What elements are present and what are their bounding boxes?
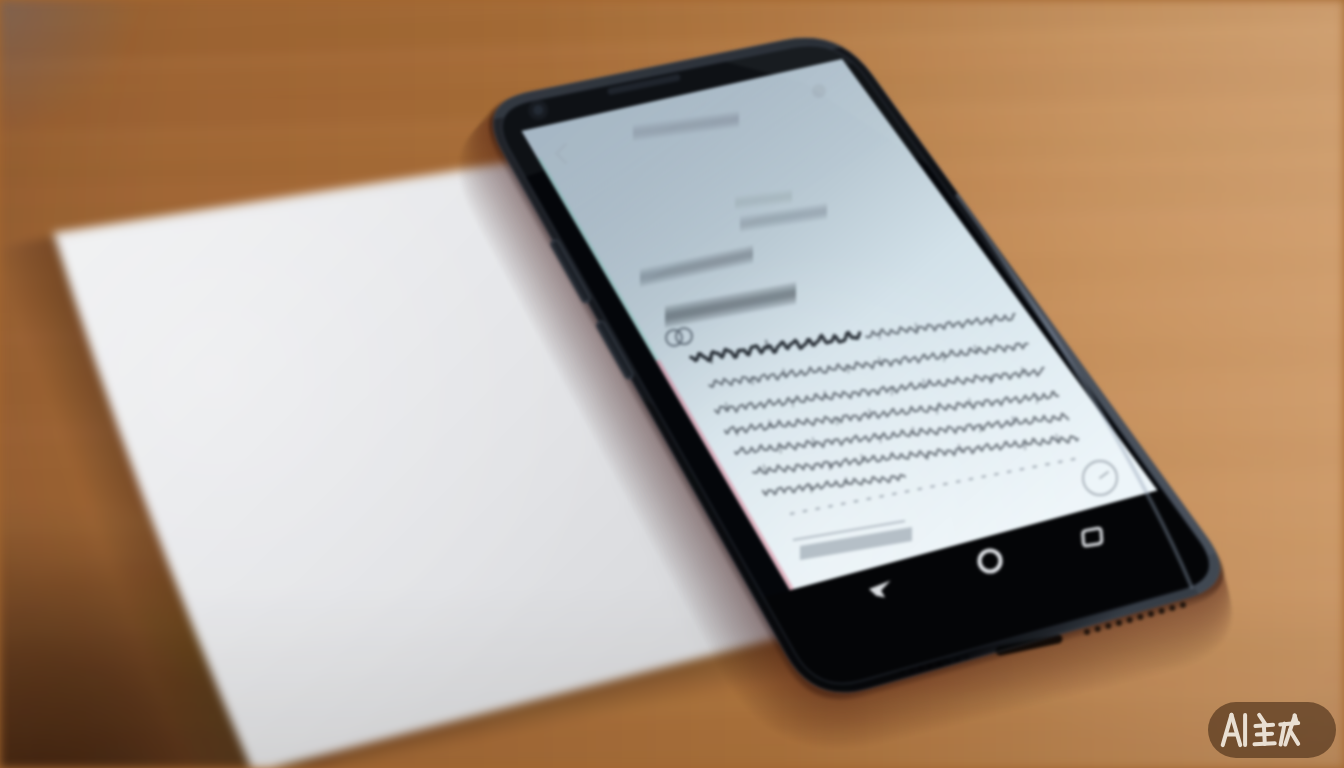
button[interactable]: Phone showing a note app on a wooden des… [0,0,1344,768]
other: AI generated badge [0,0,1344,768]
